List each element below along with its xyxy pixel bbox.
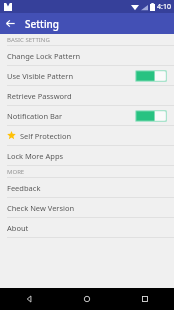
button[interactable]: Toggle bbox=[135, 110, 167, 122]
staticText: Check New Version bbox=[7, 203, 75, 213]
staticText: Use Visible Pattern bbox=[7, 71, 74, 81]
staticText: Notification Bar bbox=[7, 111, 63, 121]
button[interactable]: Toggle bbox=[135, 70, 167, 82]
button[interactable]: Back bbox=[0, 288, 58, 310]
staticText: Self Protection bbox=[20, 131, 72, 141]
button[interactable]: Check New Version bbox=[0, 198, 174, 217]
button[interactable]: Notification Bar bbox=[0, 106, 174, 125]
button[interactable]: About bbox=[0, 218, 174, 237]
staticText: Setting bbox=[25, 17, 60, 31]
staticText: MORE bbox=[7, 168, 25, 176]
staticText: Lock More Apps bbox=[7, 151, 64, 161]
staticText: BASIC SETTING bbox=[7, 36, 50, 44]
staticText: Feedback bbox=[7, 183, 41, 193]
button[interactable]: Retrieve Password bbox=[0, 86, 174, 105]
button[interactable]: Lock More Apps bbox=[0, 146, 174, 165]
staticText: 4:10 bbox=[157, 2, 171, 12]
button[interactable]: Home bbox=[58, 288, 116, 310]
button[interactable]: Use Visible Pattern bbox=[0, 66, 174, 85]
staticText: Retrieve Password bbox=[7, 91, 72, 101]
staticText: Change Lock Pattern bbox=[7, 51, 81, 61]
button[interactable]: Change Lock Pattern bbox=[0, 46, 174, 65]
button[interactable]: Recents bbox=[116, 288, 174, 310]
staticText: About bbox=[7, 223, 29, 233]
button[interactable]: Back bbox=[0, 13, 21, 34]
button[interactable]: Self Protection bbox=[0, 126, 174, 145]
button[interactable]: Feedback bbox=[0, 178, 174, 197]
